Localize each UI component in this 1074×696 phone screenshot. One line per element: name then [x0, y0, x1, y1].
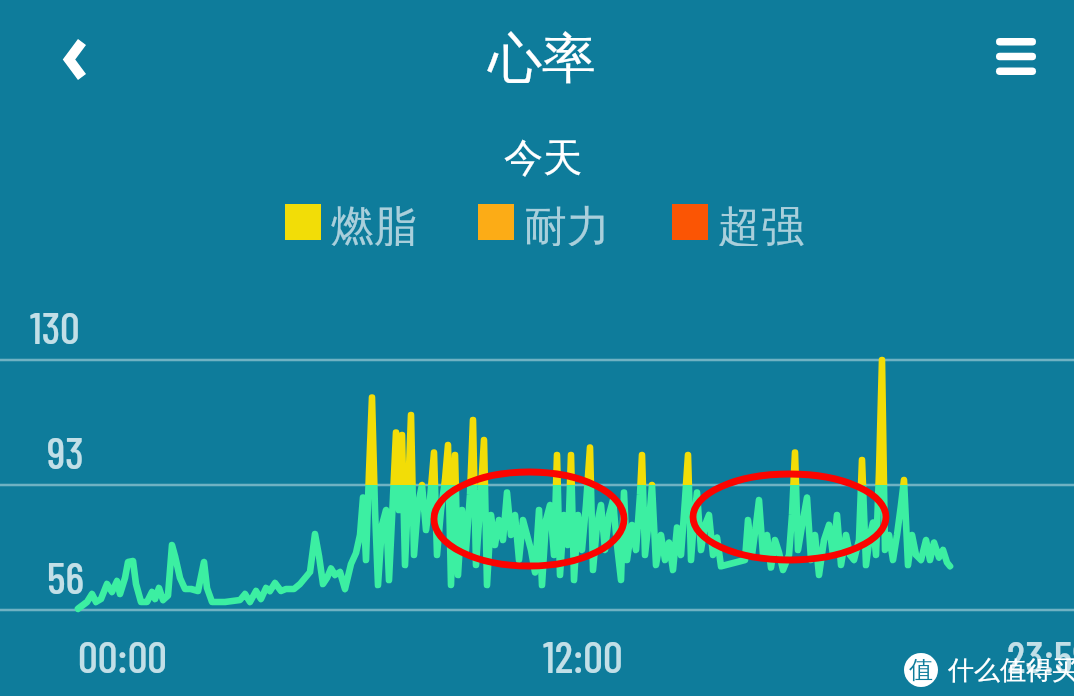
button[interactable]: Menu: [980, 20, 1052, 92]
staticText: 56: [47, 550, 84, 603]
staticText: 超强: [718, 200, 804, 246]
staticText: 12:00: [543, 629, 623, 682]
button[interactable]: 超强: [672, 200, 804, 246]
staticText: 23:59: [1007, 629, 1074, 682]
staticText: 什么值得买: [948, 654, 1074, 687]
button[interactable]: 耐力: [478, 200, 610, 246]
staticText: 心率: [488, 25, 596, 93]
staticText: 燃脂: [331, 200, 417, 246]
button[interactable]: 燃脂: [285, 200, 417, 246]
staticText: 130: [30, 300, 80, 353]
button[interactable]: Back: [38, 23, 110, 95]
staticText: 耐力: [524, 200, 610, 246]
staticText: 00:00: [78, 629, 167, 682]
staticText: 93: [47, 425, 84, 478]
staticText: 值: [909, 655, 933, 685]
staticText: 今天: [504, 133, 582, 182]
